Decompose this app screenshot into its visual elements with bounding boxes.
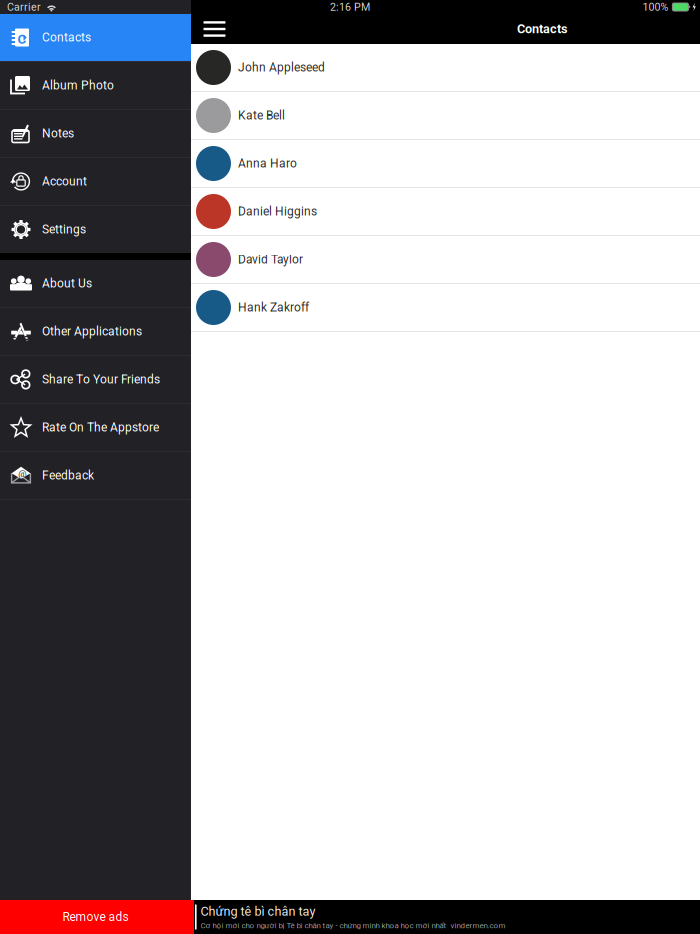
button[interactable]: David Taylor [191,236,700,284]
staticText: Cơ hội mới cho người bị Tê bì chân tay -… [201,921,506,930]
staticText: Album Photo [42,78,114,93]
button[interactable]: C [0,14,191,61]
staticText: Contacts [42,30,91,45]
staticText: Other Applications [42,324,142,339]
button[interactable]: John Appleseed [191,44,700,92]
button[interactable]: Account [0,158,191,205]
staticText: Settings [42,222,86,237]
staticText: Anna Haro [238,156,297,171]
button[interactable]: Menu [191,14,238,44]
staticText: Feedback [42,468,94,483]
staticText: Chứng tê bì chân tay [201,904,316,919]
staticText: Notes [42,126,74,141]
staticText: Account [42,174,87,189]
staticText: John Appleseed [238,60,325,75]
staticText: 2:16 PM [330,1,370,13]
button[interactable]: Share To Your Friends [0,356,191,403]
staticText: 100% [642,1,668,13]
staticText: Rate On The Appstore [42,420,159,435]
button[interactable]: Chứng tê bì chân tay [191,900,700,934]
staticText: Share To Your Friends [42,372,160,387]
staticText: @ [18,468,26,479]
button[interactable]: Kate Bell [191,92,700,140]
staticText: About Us [42,276,92,291]
button[interactable]: @ [0,452,191,499]
button[interactable]: Daniel Higgins [191,188,700,236]
button[interactable]: Hank Zakroff [191,284,700,332]
staticText: Contacts [517,22,568,36]
staticText: Daniel Higgins [238,204,317,219]
button[interactable]: Album Photo [0,62,191,109]
button[interactable]: Other Applications [0,308,191,355]
button[interactable]: Settings [0,206,191,253]
staticText: David Taylor [238,252,303,267]
button[interactable]: Rate On The Appstore [0,404,191,451]
staticText: Remove ads [62,910,128,924]
button[interactable]: Anna Haro [191,140,700,188]
staticText: C [17,31,26,47]
button[interactable]: Remove ads [0,900,191,934]
staticText: Hank Zakroff [238,300,309,315]
button[interactable]: About Us [0,260,191,307]
staticText: Carrier [7,1,41,13]
button[interactable]: Notes [0,110,191,157]
staticText: Kate Bell [238,108,285,123]
